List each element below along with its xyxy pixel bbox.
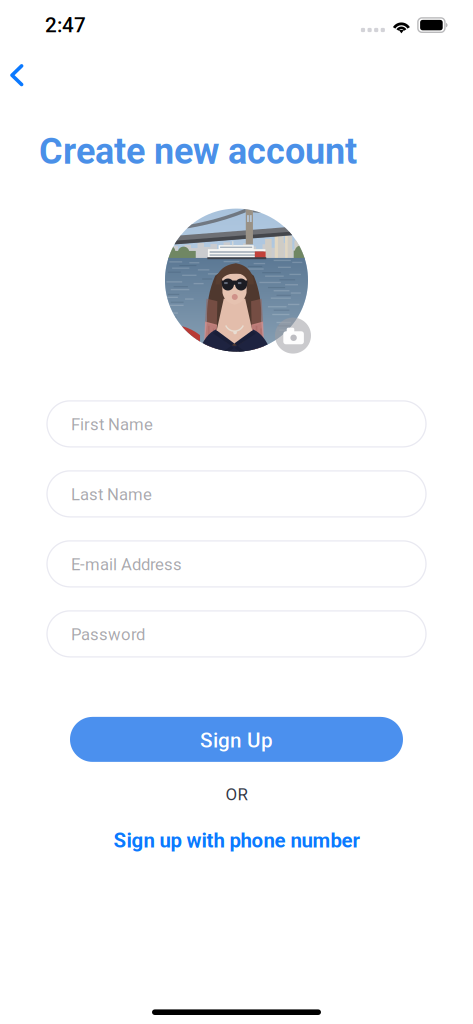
staticText: Sign Up (200, 728, 273, 752)
button[interactable]: Last Name (47, 471, 426, 517)
staticText: 2:47 (45, 13, 86, 37)
staticText: First Name (71, 415, 153, 434)
staticText: Password (71, 625, 145, 644)
staticText: OR (225, 785, 247, 804)
button[interactable]: Sign up with phone number (101, 822, 371, 859)
staticText: Create new account (39, 130, 357, 173)
button[interactable]: Password (47, 611, 426, 657)
button[interactable]: E-mail Address (47, 541, 426, 587)
staticText: Last Name (71, 485, 152, 504)
button[interactable]: Sign Up (70, 717, 403, 762)
staticText: Sign up with phone number (113, 829, 359, 852)
staticText: E-mail Address (71, 555, 182, 574)
button[interactable]: Back (0, 53, 46, 97)
button[interactable]: First Name (47, 401, 426, 447)
